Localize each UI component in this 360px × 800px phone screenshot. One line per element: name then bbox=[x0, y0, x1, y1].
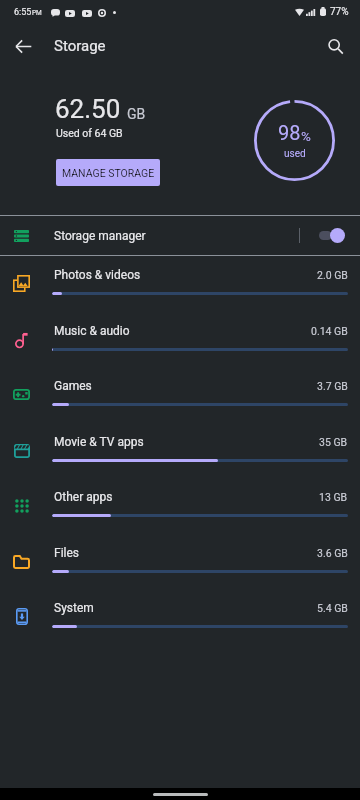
staticText: 0.14 GB bbox=[311, 325, 348, 337]
staticText: Storage bbox=[54, 37, 106, 55]
staticText: 5.4 GB bbox=[317, 602, 348, 614]
staticText: % bbox=[301, 128, 311, 144]
button[interactable]: Movie & TV apps bbox=[0, 423, 360, 478]
button[interactable]: MANAGE STORAGE bbox=[56, 159, 160, 186]
staticText: 77% bbox=[330, 6, 349, 18]
button[interactable]: Search bbox=[318, 29, 352, 63]
staticText: 3.6 GB bbox=[317, 547, 348, 559]
staticText: Files bbox=[54, 546, 80, 560]
staticText: Used of 64 GB bbox=[56, 127, 123, 139]
staticText: 62.50 bbox=[55, 94, 121, 124]
staticText: GB bbox=[127, 106, 146, 122]
button[interactable]: Games bbox=[0, 367, 360, 422]
staticText: Photos & videos bbox=[54, 268, 141, 282]
button[interactable]: Other apps bbox=[0, 478, 360, 533]
staticText: Storage manager bbox=[54, 229, 146, 243]
staticText: used bbox=[284, 148, 306, 160]
staticText: Other apps bbox=[54, 490, 113, 504]
staticText: Movie & TV apps bbox=[54, 435, 144, 449]
staticText: Music & audio bbox=[54, 324, 130, 338]
staticText: 3.7 GB bbox=[317, 380, 348, 392]
button[interactable]: Storage manager bbox=[0, 216, 360, 255]
button[interactable]: Storage manager toggle bbox=[316, 220, 350, 250]
staticText: 35 GB bbox=[319, 436, 348, 448]
staticText: 2.0 GB bbox=[317, 269, 348, 281]
staticText: 13 GB bbox=[319, 491, 348, 503]
button[interactable]: Files bbox=[0, 534, 360, 589]
button[interactable]: Photos & videos bbox=[0, 256, 360, 311]
staticText: System bbox=[54, 601, 94, 615]
button[interactable]: System bbox=[0, 589, 360, 644]
staticText: Games bbox=[54, 379, 92, 393]
staticText: PM bbox=[32, 9, 42, 17]
staticText: 6:55 bbox=[14, 7, 32, 18]
button[interactable]: Back bbox=[6, 29, 40, 63]
staticText: MANAGE STORAGE bbox=[62, 167, 155, 179]
staticText: 98 bbox=[278, 121, 301, 144]
button[interactable]: Music & audio bbox=[0, 312, 360, 367]
